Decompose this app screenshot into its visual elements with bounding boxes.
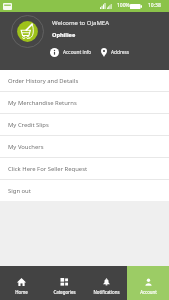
staticText: 10:38	[148, 2, 161, 9]
staticText: Welcome to OjaMEA	[52, 19, 110, 27]
staticText: Order History and Details	[8, 77, 79, 85]
staticText: Home	[15, 289, 28, 295]
staticText: 100%	[117, 2, 130, 9]
staticText: Sign out	[8, 187, 31, 195]
staticText: Ophiliee	[52, 31, 76, 39]
staticText: Notifications	[93, 289, 120, 295]
button[interactable]: Click Here For Seller Request	[0, 158, 169, 179]
button[interactable]: My Vouchers	[0, 136, 169, 157]
staticText: Address	[111, 49, 130, 56]
staticText: Categories	[53, 289, 76, 295]
button[interactable]: Notifications	[85, 266, 127, 300]
button[interactable]: Account info	[50, 48, 92, 57]
button[interactable]: My Merchandise Returns	[0, 92, 169, 113]
button[interactable]: Sign out	[0, 180, 169, 201]
other: Menu	[3, 3, 12, 10]
button[interactable]: Categories	[43, 266, 85, 300]
button[interactable]: Home	[0, 266, 43, 300]
staticText: Account info	[63, 49, 92, 56]
button[interactable]: Address	[101, 48, 130, 57]
staticText: Click Here For Seller Request	[8, 165, 88, 173]
staticText: Account	[140, 289, 157, 295]
button[interactable]: My Credit Slips	[0, 114, 169, 135]
button[interactable]: Order History and Details	[0, 70, 169, 91]
staticText: My Merchandise Returns	[8, 99, 77, 107]
staticText: My Vouchers	[8, 143, 44, 151]
button[interactable]: Account	[127, 266, 169, 300]
staticText: My Credit Slips	[8, 121, 49, 129]
